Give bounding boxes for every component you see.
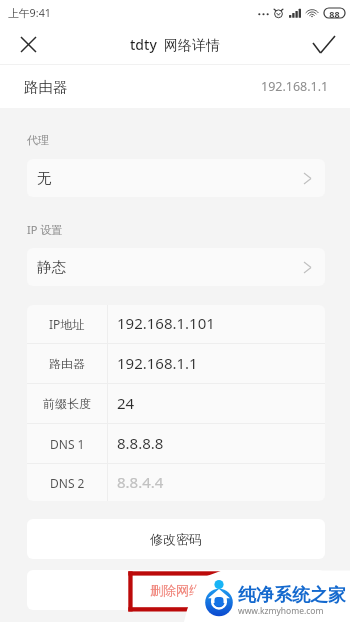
staticText: 纯净系统之家: [238, 584, 346, 607]
button[interactable]: 静态: [27, 248, 325, 286]
staticText: 前缀长度: [43, 396, 91, 411]
staticText: 路由器: [24, 78, 68, 96]
staticText: 24: [117, 393, 135, 413]
staticText: 路由器: [49, 356, 85, 371]
staticText: DNS 2: [50, 475, 85, 491]
staticText: 修改密码: [150, 531, 202, 547]
staticText: tdty 网络详情: [130, 35, 221, 54]
button[interactable]: 路由器: [0, 65, 350, 108]
staticText: DNS 1: [50, 436, 85, 452]
staticText: 192.168.1.1: [117, 353, 198, 373]
button[interactable]: Close: [9, 25, 48, 64]
button[interactable]: 修改密码: [27, 519, 325, 559]
staticText: 192.168.1.101: [117, 313, 215, 333]
staticText: IP 设置: [27, 222, 63, 237]
staticText: 无: [37, 169, 52, 187]
staticText: 删除网络: [150, 582, 202, 598]
staticText: 静态: [37, 258, 66, 276]
staticText: IP地址: [49, 316, 85, 332]
staticText: www.kzmyhome.com: [238, 605, 324, 617]
staticText: 8.8.4.4: [117, 472, 164, 492]
button[interactable]: Confirm: [304, 25, 343, 64]
button[interactable]: 无: [27, 159, 325, 197]
staticText: 8.8.8.8: [117, 433, 164, 453]
staticText: 88: [329, 8, 340, 18]
staticText: 代理: [27, 133, 49, 147]
staticText: 192.168.1.1: [261, 78, 329, 95]
button[interactable]: 删除网络: [27, 570, 325, 610]
staticText: 上午9:41: [8, 5, 52, 20]
